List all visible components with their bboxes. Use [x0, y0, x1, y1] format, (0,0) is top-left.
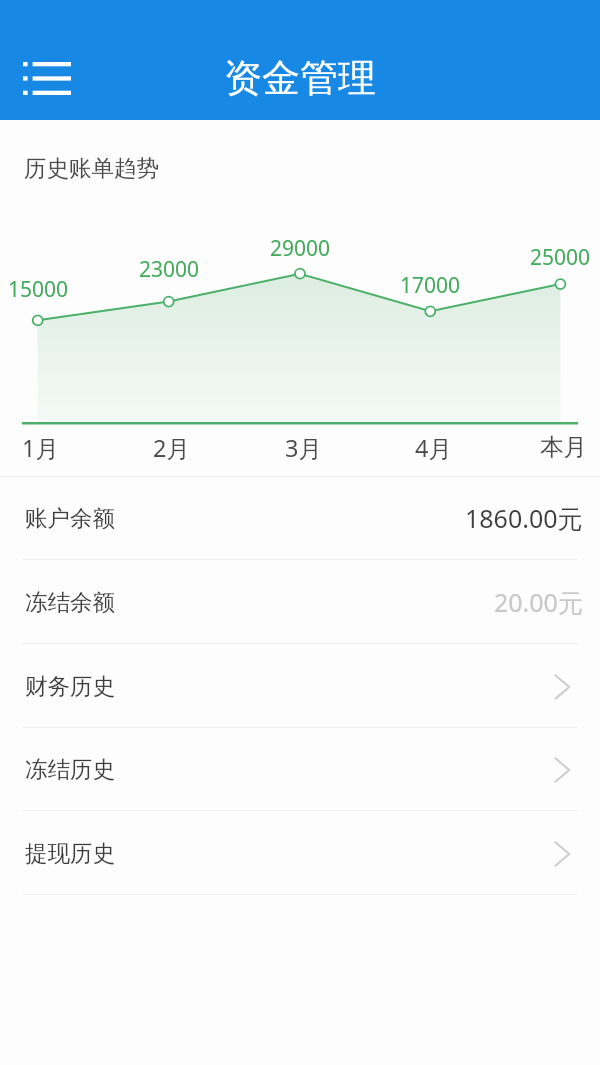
staticText: 25000 [530, 243, 591, 267]
staticText: 1月 [22, 432, 59, 462]
staticText: 本月 [540, 432, 587, 462]
button[interactable]: 冻结历史 [0, 727, 600, 811]
staticText: 1860.00元 [465, 501, 583, 535]
button[interactable]: 冻结余额 [0, 560, 600, 644]
staticText: 4月 [415, 432, 452, 462]
staticText: 15000 [8, 275, 69, 299]
staticText: 20.00元 [494, 585, 583, 619]
staticText: 冻结余额 [25, 588, 115, 616]
staticText: 29000 [270, 234, 331, 258]
staticText: 23000 [139, 255, 200, 279]
staticText: 历史账单趋势 [24, 154, 159, 182]
button[interactable]: 提现历史 [0, 811, 600, 895]
staticText: 账户余额 [25, 504, 115, 532]
staticText: 2月 [153, 432, 190, 462]
button[interactable]: 财务历史 [0, 644, 600, 728]
staticText: 冻结历史 [25, 755, 115, 783]
staticText: 17000 [400, 271, 461, 295]
button[interactable]: Menu [12, 52, 82, 104]
staticText: 提现历史 [25, 839, 115, 867]
button[interactable]: 账户余额 [0, 476, 600, 560]
staticText: 财务历史 [25, 672, 115, 700]
staticText: 资金管理 [224, 54, 376, 102]
staticText: 3月 [285, 432, 322, 462]
